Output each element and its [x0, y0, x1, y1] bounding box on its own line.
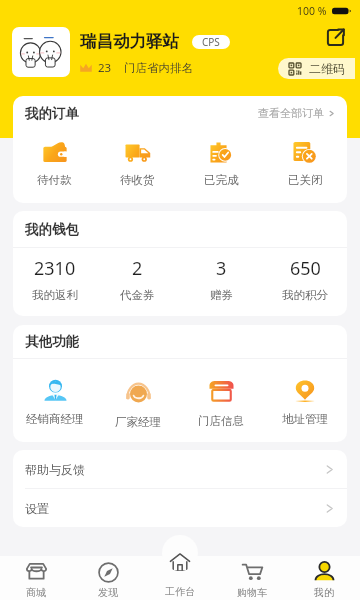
button[interactable]: 门店信息 [179, 359, 263, 442]
staticText: 门店省内排名 [124, 61, 193, 75]
staticText: 经销商经理 [26, 412, 84, 426]
staticText: 2 [132, 256, 143, 281]
staticText: 门店信息 [198, 414, 244, 428]
staticText: 设置 [25, 501, 49, 516]
staticText: 23 [98, 60, 112, 76]
button[interactable]: 购物车 [216, 556, 288, 600]
staticText: 我的钱包 [25, 221, 79, 238]
staticText: 二维码 [309, 61, 345, 76]
button[interactable]: 二维码 [278, 58, 355, 79]
staticText: 待付款 [37, 173, 72, 187]
button[interactable]: 650 [263, 248, 347, 316]
button[interactable]: 工作台 [162, 535, 198, 571]
staticText: 发现 [98, 586, 118, 599]
button[interactable]: 发现 [72, 556, 144, 600]
button[interactable]: 厂家经理 [96, 359, 179, 442]
button[interactable]: 2 [96, 248, 179, 316]
button[interactable]: 已完成 [179, 130, 263, 203]
button[interactable]: 3 [179, 248, 263, 316]
staticText: 瑞昌动力驿站 [80, 31, 179, 52]
staticText: 我的积分 [282, 288, 328, 302]
staticText: 商城 [26, 586, 46, 599]
button[interactable]: 地址管理 [263, 359, 347, 442]
staticText: 我的 [314, 586, 334, 599]
button[interactable]: 待收货 [96, 130, 179, 203]
staticText: 3 [216, 256, 227, 281]
button[interactable]: 商城 [0, 556, 72, 600]
staticText: 代金券 [120, 288, 155, 302]
staticText: CPS [202, 35, 220, 49]
staticText: 地址管理 [282, 412, 328, 426]
button[interactable]: 帮助与反馈 [13, 450, 347, 488]
staticText: 其他功能 [25, 333, 79, 350]
button[interactable]: 查看全部订单 [258, 106, 335, 120]
staticText: 帮助与反馈 [25, 462, 85, 477]
staticText: 购物车 [237, 586, 267, 599]
staticText: 厂家经理 [115, 415, 161, 429]
button[interactable]: 已关闭 [263, 130, 347, 203]
staticText: 已完成 [204, 173, 239, 187]
button[interactable]: 2310 [13, 248, 96, 316]
button[interactable]: 待付款 [13, 130, 96, 203]
staticText: 我的返利 [32, 288, 78, 302]
button[interactable]: 经销商经理 [13, 359, 96, 442]
staticText: 650 [290, 256, 321, 281]
button[interactable]: Share [318, 20, 352, 54]
staticText: 2310 [34, 256, 76, 281]
staticText: 赠券 [210, 288, 233, 302]
staticText: 100 % [297, 4, 327, 18]
button[interactable]: 设置 [13, 489, 347, 527]
staticText: 待收货 [120, 173, 155, 187]
staticText: 我的订单 [25, 105, 79, 122]
button[interactable]: 我的 [288, 556, 360, 600]
button[interactable]: CPS [192, 35, 230, 49]
staticText: 已关闭 [288, 173, 323, 187]
staticText: 查看全部订单 [258, 106, 324, 120]
staticText: 工作台 [165, 585, 195, 598]
button[interactable]: Avatar [12, 27, 70, 77]
